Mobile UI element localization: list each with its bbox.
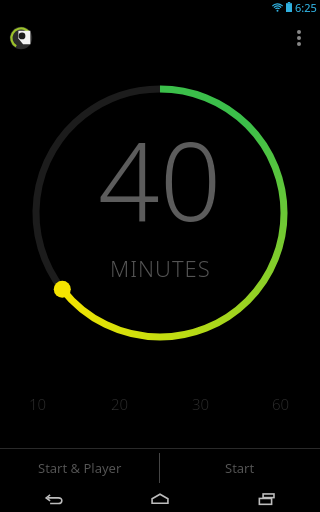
button[interactable]: 30 bbox=[187, 392, 215, 416]
staticText: Start bbox=[225, 459, 255, 477]
staticText: 60 bbox=[272, 394, 290, 414]
button[interactable]: 60 bbox=[267, 392, 295, 416]
other: App icon bbox=[6, 23, 36, 53]
button[interactable]: Start bbox=[160, 448, 320, 488]
button[interactable]: 10 bbox=[24, 392, 52, 416]
staticText: 10 bbox=[29, 394, 47, 414]
staticText: 40 bbox=[98, 106, 222, 253]
button[interactable]: Back bbox=[0, 486, 106, 512]
staticText: Start & Player bbox=[38, 459, 122, 477]
staticText: MINUTES bbox=[110, 253, 211, 283]
button[interactable]: Recent apps bbox=[213, 486, 320, 512]
staticText: 30 bbox=[192, 394, 210, 414]
button[interactable]: More options bbox=[278, 17, 320, 59]
button[interactable]: Home bbox=[106, 486, 213, 512]
button[interactable]: Start & Player bbox=[0, 448, 159, 488]
staticText: 6:25 bbox=[295, 0, 317, 14]
staticText: 20 bbox=[111, 394, 129, 414]
button[interactable]: 20 bbox=[106, 392, 134, 416]
